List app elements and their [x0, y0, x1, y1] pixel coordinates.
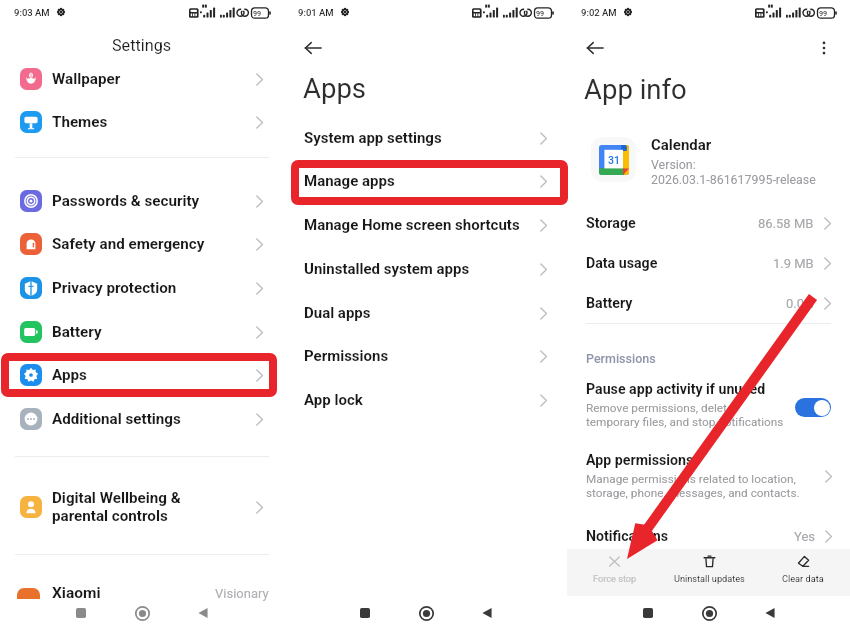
button[interactable]: Themes	[0, 100, 284, 144]
staticText: Manage permissions related to location,	[586, 472, 796, 486]
button[interactable]: Recents	[352, 600, 378, 626]
staticText: storage, phone, messages, and contacts.	[586, 486, 800, 500]
staticText: Data usage	[586, 255, 773, 272]
button[interactable]: Xiaomi	[0, 578, 284, 608]
button[interactable]: Recents	[68, 600, 94, 626]
staticText: Clear data	[782, 573, 824, 584]
staticText: Permissions	[304, 347, 536, 365]
staticText: Pause app activity if unused	[586, 381, 766, 398]
button[interactable]: Back	[757, 600, 783, 626]
staticText: Uninstalled system apps	[304, 260, 536, 278]
staticText: Battery	[586, 295, 786, 312]
button[interactable]: System app settings	[284, 116, 567, 160]
button[interactable]: Back	[474, 600, 500, 626]
staticText: App permissions	[586, 452, 694, 469]
staticText: Manage Home screen shortcuts	[304, 216, 536, 234]
button[interactable]: Uninstalled system apps	[284, 247, 567, 291]
staticText: Digital Wellbeing &	[52, 489, 181, 507]
button[interactable]: Back	[583, 36, 607, 60]
staticText: 31	[608, 154, 620, 166]
staticText: Yes	[794, 529, 815, 544]
button[interactable]: Back	[190, 600, 216, 626]
button[interactable]: App lock	[284, 378, 567, 422]
staticText: Wallpaper	[52, 70, 121, 88]
staticText: Additional settings	[52, 410, 181, 428]
staticText: 2026.03.1-861617995-release	[651, 172, 816, 187]
staticText: Calendar	[651, 136, 712, 154]
button[interactable]: Safety and emergency	[0, 222, 284, 266]
staticText: Passwords & security	[52, 192, 200, 210]
button[interactable]: Apps	[0, 353, 284, 397]
staticText: Permissions	[586, 351, 656, 366]
staticText: Settings	[112, 36, 172, 55]
button[interactable]: More options	[812, 36, 836, 60]
staticText: System app settings	[304, 129, 536, 147]
staticText: 9:01 AM	[298, 7, 334, 18]
button[interactable]: Storage	[567, 203, 850, 243]
staticText: parental controls	[52, 507, 168, 525]
button[interactable]: App permissions	[567, 452, 850, 500]
staticText: temporary files, and stop notifications	[586, 415, 784, 429]
button[interactable]: Digital Wellbeing &	[0, 485, 284, 529]
button[interactable]: Battery	[567, 283, 850, 323]
button[interactable]: Force stop	[567, 549, 662, 596]
button[interactable]: Notifications	[567, 524, 850, 548]
button[interactable]: Home	[129, 600, 155, 626]
staticText: Privacy protection	[52, 279, 177, 297]
staticText: 86.58 MB	[758, 216, 814, 231]
staticText: Themes	[52, 113, 108, 131]
button[interactable]: Permissions	[284, 334, 567, 378]
button[interactable]: Battery	[0, 310, 284, 354]
button[interactable]: Recents	[635, 600, 661, 626]
staticText: Notifications	[586, 528, 794, 545]
button[interactable]: Manage Home screen shortcuts	[284, 203, 567, 247]
staticText: 99	[536, 9, 545, 17]
staticText: Safety and emergency	[52, 235, 205, 253]
staticText: Remove permissions, delete	[586, 401, 734, 415]
button[interactable]: Passwords & security	[0, 179, 284, 223]
button[interactable]: Home	[696, 600, 722, 626]
staticText: Apps	[303, 72, 367, 104]
staticText: Dual apps	[304, 304, 536, 322]
staticText: Uninstall updates	[674, 573, 745, 584]
staticText: Battery	[52, 323, 102, 341]
staticText: 0.0%	[786, 296, 814, 311]
button[interactable]: Data usage	[567, 243, 850, 283]
staticText: Manage apps	[304, 172, 536, 190]
button[interactable]: Back	[301, 36, 325, 60]
button[interactable]: Home	[413, 600, 439, 626]
staticText: 99	[819, 9, 828, 17]
staticText: Xiaomi	[52, 584, 101, 602]
staticText: Version:	[651, 157, 696, 172]
staticText: 9:03 AM	[14, 7, 50, 18]
staticText: 1.9 MB	[773, 256, 814, 271]
button[interactable]: Pause app activity if unused	[567, 381, 850, 429]
button[interactable]: Dual apps	[284, 291, 567, 335]
button[interactable]: Pause app activity toggle	[795, 398, 831, 417]
button[interactable]: Uninstall updates	[662, 549, 756, 596]
staticText: Visionary	[215, 586, 269, 601]
staticText: Apps	[52, 366, 87, 384]
button[interactable]: Additional settings	[0, 397, 284, 441]
staticText: Storage	[586, 215, 758, 232]
staticText: App info	[584, 73, 687, 105]
staticText: 9:02 AM	[581, 7, 617, 18]
button[interactable]: Wallpaper	[0, 57, 284, 101]
staticText: Force stop	[593, 573, 637, 584]
button[interactable]: Privacy protection	[0, 266, 284, 310]
button[interactable]: Manage apps	[284, 159, 567, 203]
staticText: 99	[253, 9, 262, 17]
button[interactable]: Clear data	[756, 549, 850, 596]
staticText: App lock	[304, 391, 536, 409]
